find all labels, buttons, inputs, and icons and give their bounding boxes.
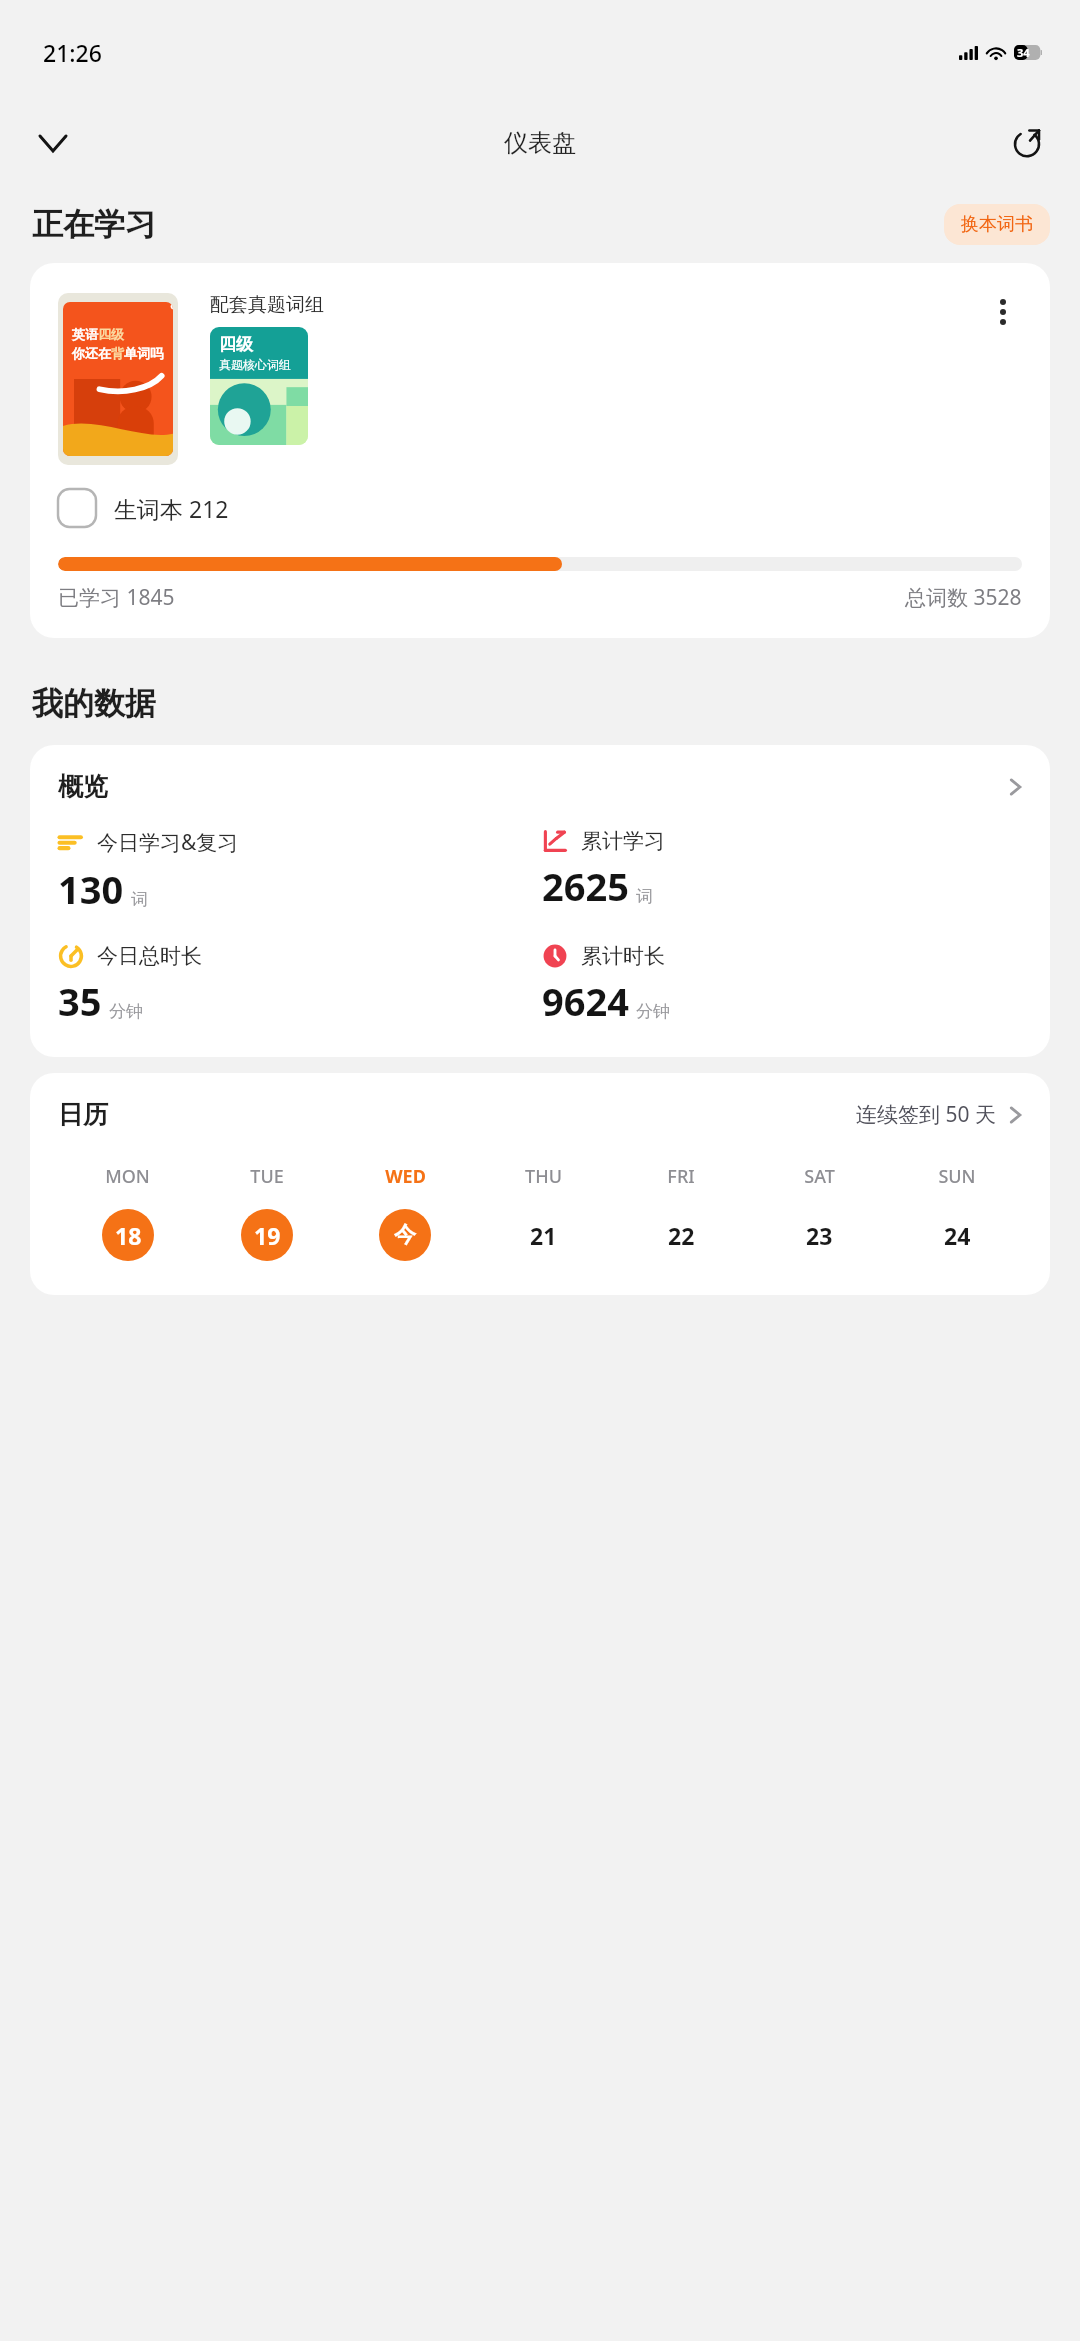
staticText: 词 [131, 889, 148, 910]
button[interactable]: 累计时长 [542, 943, 1026, 1027]
button[interactable]: 今日总时长 [58, 943, 542, 1027]
staticText: 今日学习&复习 [97, 828, 239, 857]
staticText: 2625 [542, 860, 629, 912]
staticText: 四级 [98, 326, 124, 342]
button[interactable]: 累计学习 [542, 828, 1026, 912]
button[interactable]: Share [1000, 116, 1054, 170]
button[interactable]: 21 [517, 1209, 569, 1261]
button[interactable]: 23 [793, 1209, 845, 1261]
staticText: 换本词书 [961, 213, 1033, 236]
staticText: SAT [804, 1164, 835, 1189]
staticText: 英语 [72, 326, 98, 342]
staticText: 正在学习 [32, 205, 156, 244]
button[interactable]: 概览 [58, 771, 1026, 802]
button[interactable]: 今 [379, 1209, 431, 1261]
button[interactable]: 18 [102, 1209, 154, 1261]
staticText: MON [105, 1164, 150, 1189]
staticText: 21 [530, 1220, 557, 1251]
staticText: 19 [254, 1220, 281, 1251]
button[interactable]: 生词本 212 [58, 489, 229, 527]
staticText: 仪表盘 [504, 128, 576, 158]
staticText: 9624 [542, 975, 629, 1027]
staticText: 日历 [58, 1099, 108, 1130]
staticText: TUE [250, 1164, 284, 1189]
staticText: 35 [58, 975, 102, 1027]
staticText: 23 [806, 1220, 833, 1251]
button[interactable]: 19 [241, 1209, 293, 1261]
button[interactable]: 换本词书 [944, 204, 1050, 245]
staticText: 词 [636, 886, 653, 907]
staticText: 18 [115, 1220, 142, 1251]
staticText: 24 [944, 1220, 971, 1251]
staticText: WED [385, 1164, 426, 1189]
staticText: 生词本 212 [114, 493, 229, 524]
button[interactable]: 24 [931, 1209, 983, 1261]
staticText: 22 [668, 1220, 695, 1251]
button[interactable]: Collapse [26, 116, 80, 170]
staticText: 我的数据 [32, 684, 156, 723]
staticText: 真题核心词组 [219, 357, 291, 372]
staticText: FRI [667, 1164, 695, 1189]
staticText: 今 [394, 1221, 416, 1249]
staticText: 单词吗 [124, 345, 163, 361]
staticText: 背 [111, 345, 124, 361]
staticText: 配套真题词组 [210, 293, 324, 317]
staticText: 130 [58, 863, 124, 915]
staticText: 累计学习 [581, 828, 665, 854]
staticText: 分钟 [636, 1001, 670, 1022]
staticText: 34 [1017, 45, 1030, 60]
button[interactable]: More options [984, 293, 1022, 331]
staticText: 总词数 3528 [905, 583, 1022, 612]
staticText: 连续签到 50 天 [856, 1100, 996, 1129]
staticText: 已学习 1845 [58, 583, 175, 612]
staticText: 21:26 [43, 37, 102, 68]
staticText: SUN [938, 1164, 976, 1189]
button[interactable]: 今日学习&复习 [58, 828, 542, 915]
staticText: 四级 [219, 334, 253, 355]
button[interactable]: 连续签到 50 天 [856, 1100, 1026, 1129]
staticText: 你还在 [72, 345, 111, 361]
button[interactable]: 英语 [30, 263, 1050, 638]
button[interactable]: 22 [655, 1209, 707, 1261]
staticText: 分钟 [109, 1001, 143, 1022]
staticText: 今日总时长 [97, 943, 202, 969]
staticText: 累计时长 [581, 943, 665, 969]
staticText: THU [525, 1164, 562, 1189]
staticText: 概览 [58, 771, 108, 802]
